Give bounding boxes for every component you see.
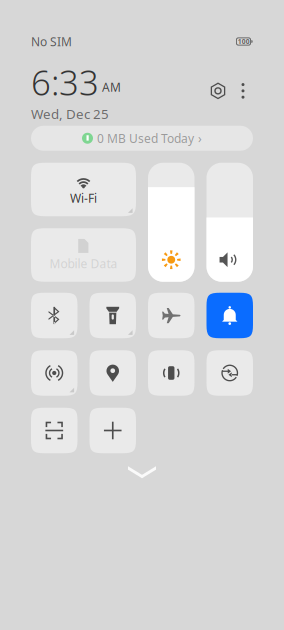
button[interactable]: Notifications [206,293,253,338]
staticText: 0 MB Used Today [97,130,194,146]
staticText: › [198,130,202,146]
button[interactable]: Brightness [148,163,194,282]
button[interactable]: Auto rotate [206,350,253,396]
button[interactable]: Collapse [123,461,161,483]
staticText: 6:33 [31,59,99,105]
button[interactable]: Airplane mode [148,293,194,338]
staticText: Wed, Dec 25 [31,105,109,123]
staticText: 100 [238,37,250,46]
staticText: No SIM [31,33,72,49]
button[interactable]: Mobile Data [31,228,136,282]
button[interactable]: Settings [203,76,233,106]
staticText: AM [102,79,121,95]
button[interactable]: Location [89,350,136,396]
staticText: Wi-Fi [70,190,97,206]
button[interactable]: Volume [206,163,253,282]
staticText: Mobile Data [49,256,117,272]
button[interactable]: Add [89,408,136,453]
button[interactable]: More options [233,76,253,105]
button[interactable]: Bluetooth [31,293,77,338]
button[interactable]: Wi-Fi [31,163,136,216]
button[interactable]: 0 MB Used Today [31,126,253,151]
button[interactable]: Hotspot [31,350,77,396]
button[interactable]: Vibrate [148,350,194,396]
button[interactable]: Flashlight [89,293,136,338]
button[interactable]: Scan [31,408,77,453]
